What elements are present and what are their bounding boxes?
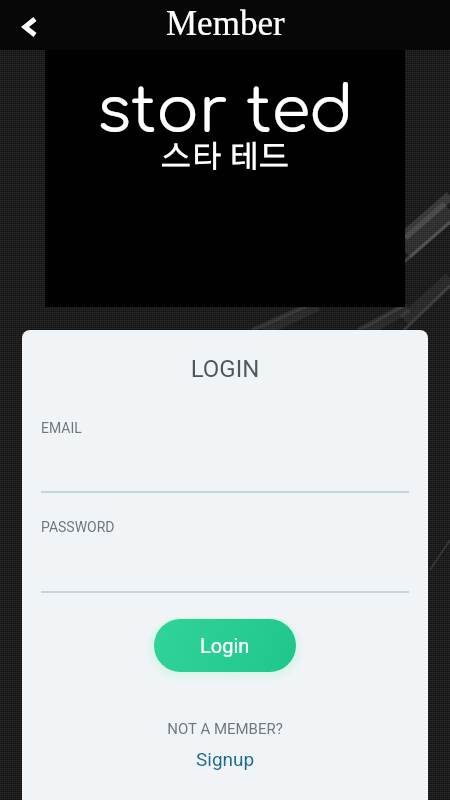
button[interactable]: Back [10,7,50,47]
staticText: LOGIN [41,355,409,383]
staticText: 스타 테드 [161,142,290,173]
staticText: EMAIL [41,420,82,436]
staticText: stor ted [97,76,354,146]
staticText: PASSWORD [41,519,115,535]
staticText: NOT A MEMBER? [41,720,409,738]
button[interactable]: Login [154,619,296,672]
button[interactable]: Signup [196,748,255,770]
staticText: Member [166,4,285,43]
staticText: Login [200,634,250,657]
